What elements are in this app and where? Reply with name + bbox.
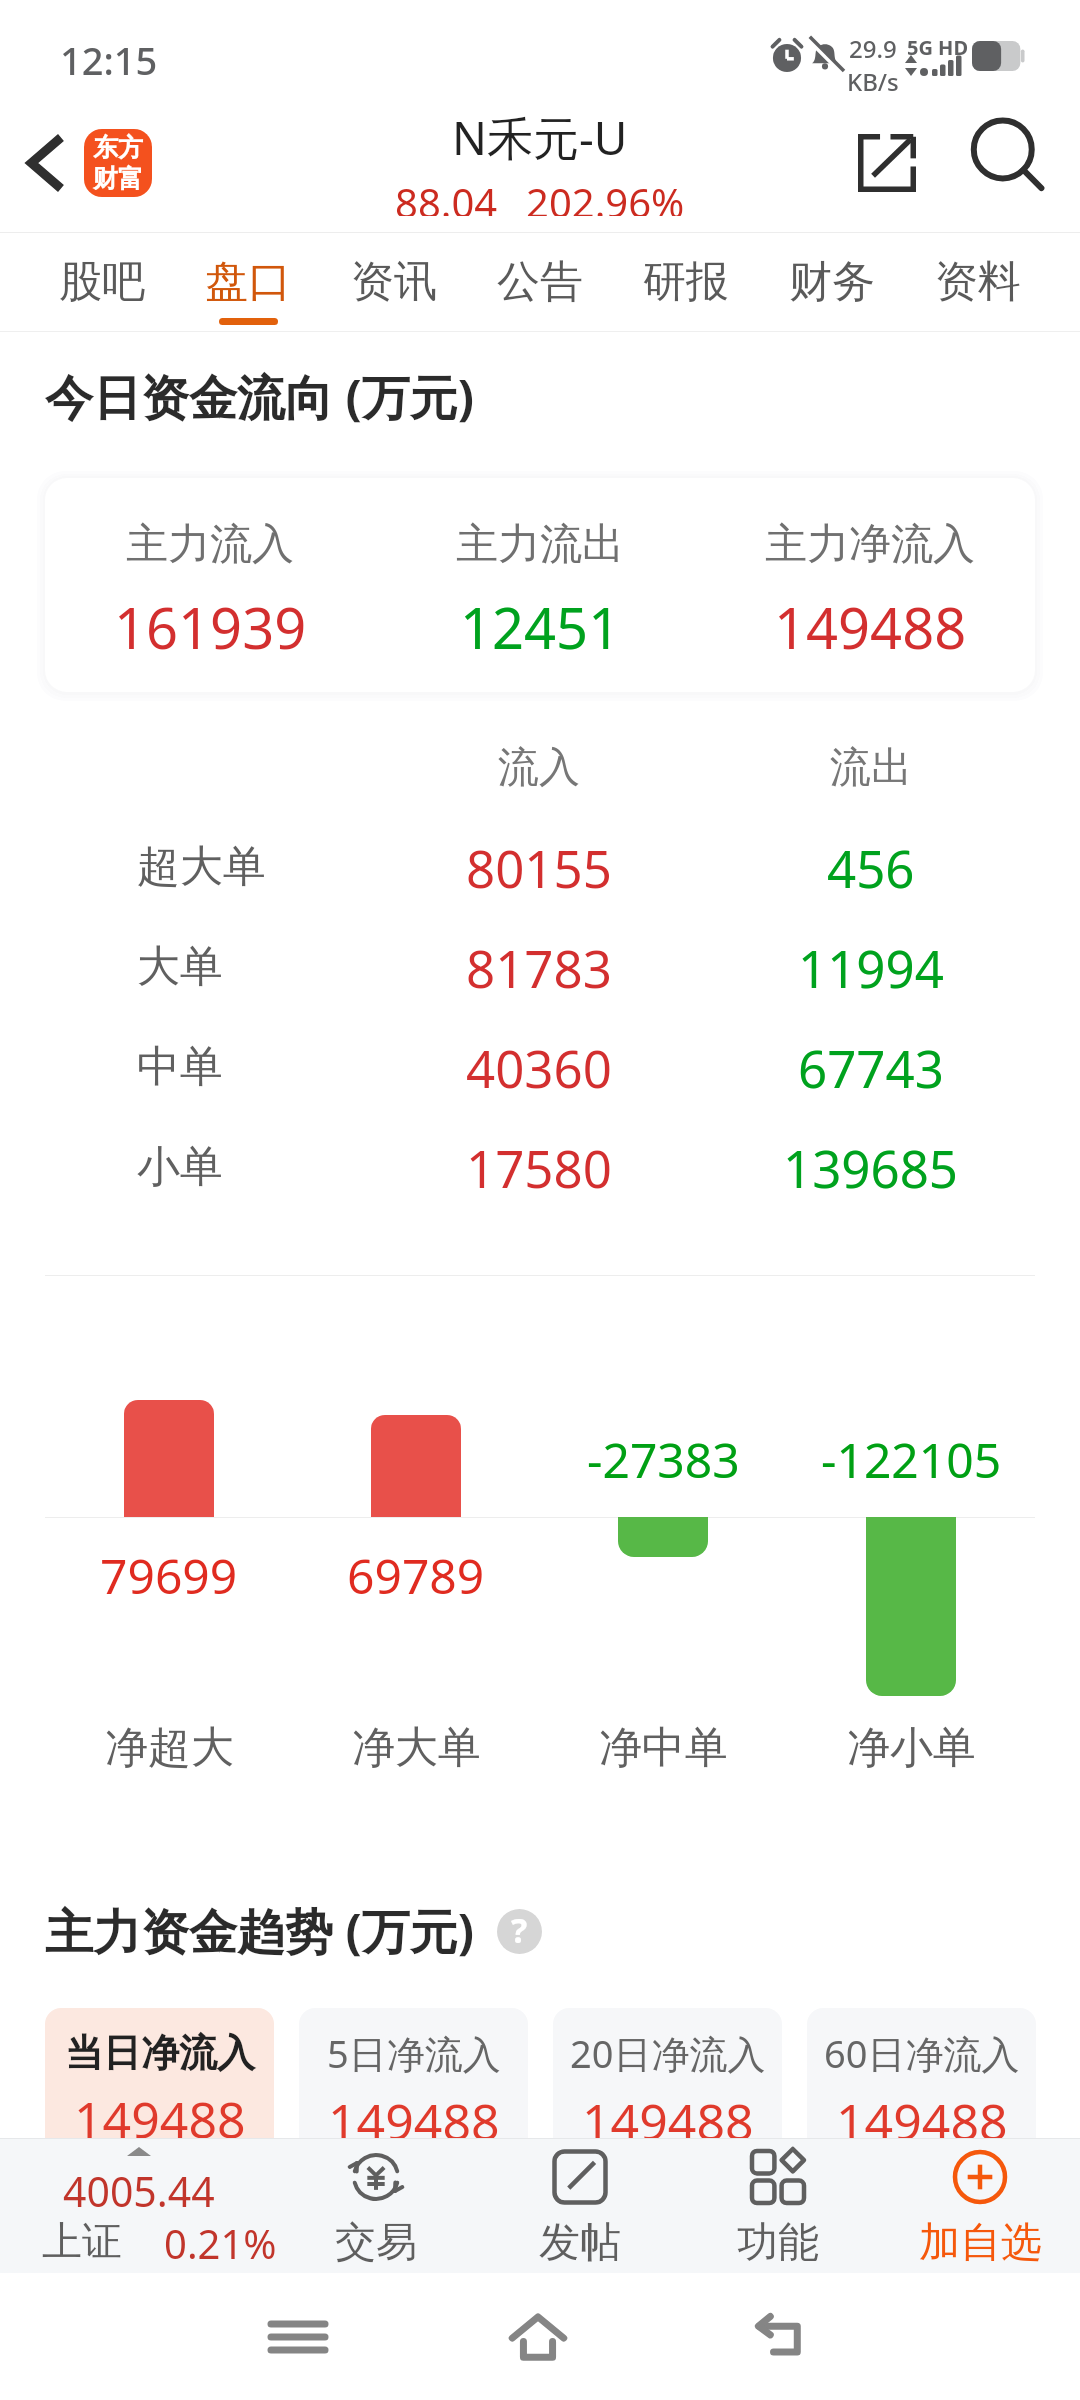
staticText: 149488 [328, 2087, 500, 2155]
button[interactable]: 资讯 [328, 236, 460, 330]
staticText: 456 [827, 833, 915, 902]
staticText: 88.04 [395, 175, 498, 216]
staticText: 161939 [114, 589, 307, 665]
staticText: 流出 [830, 742, 912, 794]
staticText: 研报 [643, 255, 729, 309]
staticText: 0.21% [164, 2216, 277, 2270]
staticText: 60日净流入 [824, 2027, 1020, 2079]
staticText: 当日净流入 [65, 2029, 255, 2077]
button[interactable]: 20日净流入 [553, 2008, 782, 2158]
button[interactable]: 60日净流入 [807, 2008, 1036, 2158]
staticText: -122105 [821, 1427, 1002, 1492]
button[interactable]: 加自选 [885, 2138, 1075, 2273]
staticText: 202.96% [526, 175, 685, 216]
staticText: 主力流出 [456, 518, 624, 571]
staticText: 小单 [137, 1140, 223, 1194]
button[interactable]: 功能 [683, 2138, 873, 2273]
staticText: 149488 [582, 2087, 754, 2155]
button[interactable]: Share [838, 114, 935, 211]
staticText: 5G HD [907, 34, 969, 61]
staticText: 净小单 [847, 1721, 976, 1775]
button[interactable]: East Money [84, 129, 152, 197]
staticText: 40360 [466, 1033, 612, 1102]
staticText: 功能 [737, 2217, 819, 2269]
staticText: KB/s [847, 65, 899, 98]
staticText: N禾元-U [452, 106, 628, 169]
button[interactable]: 公告 [474, 236, 606, 330]
button[interactable]: 资料 [912, 236, 1044, 330]
staticText: 上证 [42, 2216, 122, 2266]
staticText: 11994 [798, 933, 944, 1002]
button[interactable]: 4005.44 [0, 2138, 290, 2273]
button[interactable]: 交易 [281, 2138, 471, 2273]
button[interactable]: 当日净流入 [45, 2008, 274, 2158]
staticText: 发帖 [539, 2217, 621, 2269]
staticText: 加自选 [919, 2217, 1042, 2269]
staticText: 12451 [460, 589, 621, 665]
staticText: 净中单 [599, 1721, 728, 1775]
staticText: 交易 [335, 2217, 417, 2269]
staticText: 盘口 [205, 255, 291, 309]
staticText: 公告 [497, 255, 583, 309]
staticText: 大单 [137, 940, 223, 994]
staticText: 29.9 [849, 32, 897, 65]
button[interactable] [0, 917, 1080, 1017]
staticText: 4005.44 [63, 2163, 215, 2219]
staticText: 东方 [93, 132, 143, 163]
staticText: 净大单 [352, 1721, 481, 1775]
staticText: 今日资金流向 (万元) [45, 364, 475, 430]
staticText: 中单 [137, 1040, 223, 1094]
staticText: ? [511, 1909, 528, 1952]
button[interactable]: Search [962, 112, 1062, 212]
staticText: 主力资金趋势 (万元) [45, 1898, 475, 1964]
staticText: 12:15 [60, 34, 158, 86]
staticText: 149488 [836, 2087, 1008, 2155]
staticText: 80155 [466, 833, 612, 902]
staticText: 财富 [93, 163, 143, 194]
staticText: 资料 [935, 255, 1021, 309]
button[interactable] [0, 817, 1080, 917]
staticText: 超大单 [137, 840, 266, 894]
staticText: -27383 [587, 1427, 740, 1492]
staticText: 67743 [798, 1033, 944, 1102]
staticText: 净超大 [105, 1721, 234, 1775]
staticText: 139685 [783, 1133, 959, 1202]
staticText: 股吧 [59, 255, 145, 309]
button[interactable]: Help [497, 1909, 542, 1954]
staticText: 流入 [498, 742, 580, 794]
button[interactable]: Recent apps [233, 2273, 363, 2400]
button[interactable]: Home [473, 2273, 603, 2400]
button[interactable]: 研报 [620, 236, 752, 330]
staticText: 5日净流入 [327, 2027, 501, 2079]
staticText: 资讯 [351, 255, 437, 309]
button[interactable]: Back [0, 118, 90, 208]
staticText: 17580 [466, 1133, 612, 1202]
button[interactable]: 股吧 [36, 236, 168, 330]
button[interactable]: 5日净流入 [299, 2008, 528, 2158]
button[interactable] [0, 1017, 1080, 1117]
staticText: 主力净流入 [765, 518, 975, 571]
staticText: 149488 [774, 589, 967, 665]
staticText: 主力流入 [126, 518, 294, 571]
button[interactable] [0, 1117, 1080, 1217]
staticText: 79699 [100, 1543, 238, 1608]
staticText: 81783 [466, 933, 612, 1002]
button[interactable]: 发帖 [485, 2138, 675, 2273]
staticText: 149488 [74, 2085, 246, 2153]
button[interactable]: Back [715, 2273, 845, 2400]
staticText: 20日净流入 [570, 2027, 766, 2079]
button[interactable]: 主力流入 [45, 478, 1035, 692]
staticText: 69789 [347, 1543, 485, 1608]
button[interactable]: 盘口 [182, 236, 314, 330]
staticText: 财务 [789, 255, 875, 309]
button[interactable]: 财务 [766, 236, 898, 330]
